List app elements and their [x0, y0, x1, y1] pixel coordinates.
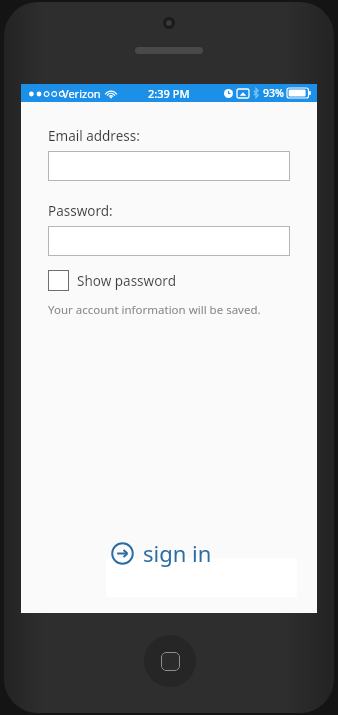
- staticText: Verizon: [62, 86, 101, 101]
- button[interactable]: Show password: [48, 270, 182, 291]
- staticText: Password:: [48, 202, 113, 220]
- staticText: 93%: [263, 86, 284, 100]
- other: Home: [144, 635, 196, 687]
- staticText: 2:39 PM: [148, 86, 190, 101]
- button[interactable]: Sign in: [107, 536, 216, 570]
- staticText: sign in: [143, 538, 212, 568]
- button[interactable]: [48, 151, 290, 181]
- staticText: Your account information will be saved.: [48, 302, 261, 318]
- button[interactable]: [48, 226, 290, 256]
- other: Sign in: [111, 542, 134, 565]
- staticText: Show password: [77, 272, 176, 290]
- staticText: Email address:: [48, 127, 140, 145]
